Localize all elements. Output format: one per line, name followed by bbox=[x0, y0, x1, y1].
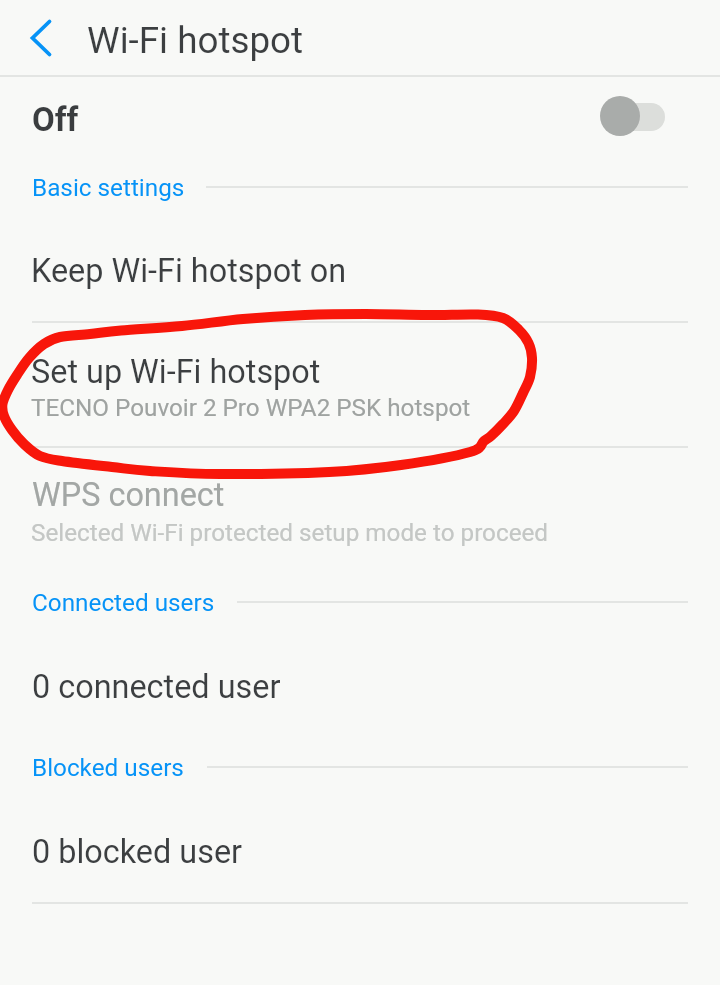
button[interactable]: 0 blocked user bbox=[0, 796, 720, 902]
staticText: Keep Wi-Fi hotspot on bbox=[31, 252, 347, 290]
staticText: 0 blocked user bbox=[32, 833, 243, 871]
staticText: Selected Wi-Fi protected setup mode to p… bbox=[31, 519, 549, 547]
button[interactable]: Set up Wi-Fi hotspot bbox=[0, 321, 720, 446]
button[interactable]: Navigate up bbox=[0, 0, 76, 76]
staticText: Basic settings bbox=[32, 173, 185, 201]
staticText: Wi-Fi hotspot bbox=[87, 19, 304, 62]
staticText: WPS connect bbox=[32, 476, 225, 514]
button[interactable]: Off bbox=[0, 76, 720, 158]
staticText: TECNO Pouvoir 2 Pro WPA2 PSK hotspot bbox=[31, 394, 471, 422]
button[interactable]: Keep Wi-Fi hotspot on bbox=[0, 215, 720, 321]
button[interactable]: 0 connected user bbox=[0, 632, 720, 737]
staticText: Off bbox=[32, 100, 79, 139]
staticText: Connected users bbox=[32, 588, 215, 616]
staticText: Set up Wi-Fi hotspot bbox=[31, 353, 321, 391]
button[interactable]: WPS connect bbox=[0, 446, 720, 571]
staticText: Blocked users bbox=[32, 753, 184, 781]
staticText: 0 connected user bbox=[32, 668, 281, 706]
